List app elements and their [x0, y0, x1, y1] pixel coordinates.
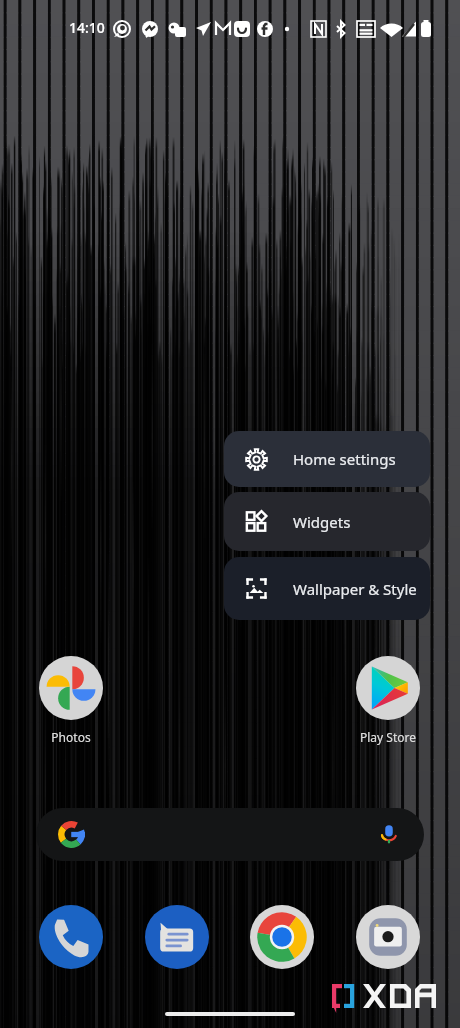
other: Voice search: [376, 821, 402, 847]
button[interactable]: Photos: [38, 655, 104, 745]
staticText: Wallpaper & Style: [293, 579, 417, 599]
button[interactable]: Messages: [144, 904, 210, 970]
button[interactable]: Chrome: [249, 904, 315, 970]
button[interactable]: Phone: [38, 904, 104, 970]
button[interactable]: Home settings: [224, 431, 430, 487]
other: XDA: [330, 982, 442, 1012]
button[interactable]: Search with Google: [36, 808, 424, 861]
button[interactable]: Widgets: [224, 492, 430, 551]
staticText: 14:10: [69, 18, 105, 37]
button[interactable]: Play Store: [355, 655, 421, 745]
staticText: Photos: [51, 729, 91, 745]
button[interactable]: Camera: [355, 904, 421, 970]
staticText: Widgets: [293, 512, 351, 532]
other: Search with Google: [58, 821, 85, 848]
button[interactable]: Wallpaper & Style: [224, 557, 430, 620]
staticText: Home settings: [293, 449, 396, 469]
staticText: Play Store: [360, 729, 416, 745]
